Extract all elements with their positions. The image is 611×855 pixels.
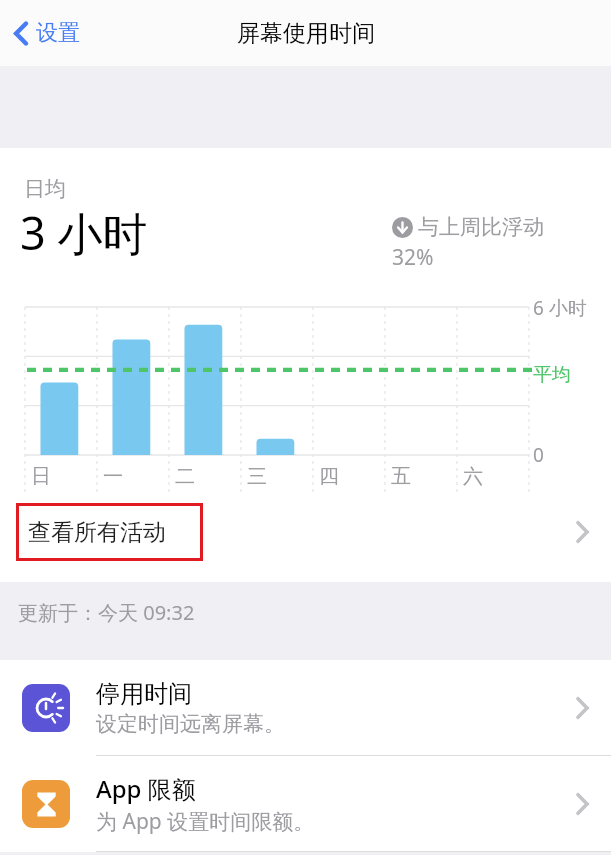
other: App Limits	[33, 791, 60, 818]
staticText: 设置	[36, 19, 80, 47]
staticText: 为 App 设置时间限额。	[96, 807, 315, 836]
button[interactable]: 设置	[8, 11, 86, 55]
staticText: 二	[175, 464, 195, 489]
staticText: 四	[319, 464, 339, 489]
staticText: 一	[103, 464, 123, 489]
staticText: 0	[533, 442, 544, 468]
staticText: 3 小时	[20, 202, 148, 263]
staticText: 六	[463, 464, 483, 489]
staticText: 设定时间远离屏幕。	[96, 711, 285, 737]
staticText: 32%	[392, 243, 434, 272]
staticText: 停用时间	[96, 679, 192, 709]
staticText: 6 小时	[533, 295, 587, 321]
button[interactable]: Downtime	[0, 660, 611, 755]
staticText: App 限额	[96, 772, 196, 805]
staticText: 五	[391, 464, 411, 489]
staticText: 日均	[24, 176, 66, 202]
staticText: 平均	[533, 363, 571, 387]
staticText: 更新于：今天 09:32	[18, 599, 195, 626]
staticText: 三	[247, 464, 267, 489]
staticText: 与上周比浮动	[418, 214, 544, 240]
button[interactable]: App Limits	[0, 756, 611, 851]
button[interactable]: 查看所有活动	[0, 500, 611, 564]
staticText: 日	[31, 464, 51, 489]
staticText: 查看所有活动	[28, 518, 166, 547]
staticText: 屏幕使用时间	[237, 19, 375, 48]
other: Downtime	[31, 693, 61, 723]
